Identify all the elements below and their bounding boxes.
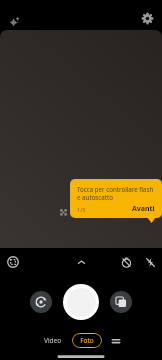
button[interactable]: Video — [39, 333, 67, 348]
button[interactable]: Flash and timer — [55, 204, 71, 220]
button[interactable]: Switch camera — [30, 291, 52, 313]
button[interactable]: Scene optimizer — [5, 254, 21, 270]
button[interactable]: Scene optimizer — [6, 13, 22, 29]
button[interactable]: Settings — [138, 9, 156, 27]
button[interactable]: Tocca per controllare flash e autoscatto — [70, 179, 162, 218]
button[interactable]: Foto — [72, 333, 102, 348]
button[interactable]: Expand options — [72, 253, 90, 271]
button[interactable]: Gallery — [110, 291, 132, 313]
button[interactable]: More modes — [109, 334, 123, 348]
button[interactable]: Flash off — [142, 254, 158, 270]
staticText: 1/5 — [77, 206, 86, 213]
staticText: Video — [44, 336, 62, 345]
staticText: Tocca per controllare flash e autoscatto — [77, 185, 155, 201]
button[interactable]: Avanti — [132, 204, 155, 214]
button[interactable]: Take photo — [63, 284, 99, 320]
staticText: Foto — [80, 336, 94, 345]
button[interactable]: Timer off — [118, 254, 134, 270]
